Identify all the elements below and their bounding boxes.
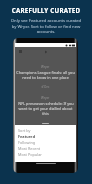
button[interactable]: Following — [18, 139, 73, 145]
staticText: NFL preseason schedule: If you — [18, 101, 74, 106]
button[interactable]: Most Popular — [18, 151, 73, 157]
staticText: d'Oro — [15, 85, 76, 89]
button[interactable]: Wryxr — [15, 96, 76, 116]
button[interactable]: Sort by — [18, 127, 73, 133]
staticText: Wryxr — [41, 65, 50, 69]
staticText: Wryxr — [41, 96, 50, 100]
staticText: Sort by — [18, 128, 31, 133]
button[interactable]: Most Recent — [18, 145, 73, 151]
staticText: Following — [18, 140, 36, 145]
button[interactable]: Featured — [18, 133, 73, 139]
staticText: Most Popular — [18, 152, 42, 157]
staticText: Featured — [18, 134, 36, 139]
staticText: Only see Featured accounts curated by Wr… — [0, 18, 92, 34]
staticText: CAREFULLY CURATED — [0, 6, 92, 14]
button[interactable]: Wryxr — [15, 65, 76, 80]
staticText: want to get your dialled about this — [15, 106, 76, 116]
staticText: Champions League finals: all you — [16, 70, 75, 75]
button[interactable]: Menu — [18, 49, 23, 54]
staticText: Most Recent — [18, 146, 41, 151]
staticText: need to know in one place — [22, 75, 69, 80]
